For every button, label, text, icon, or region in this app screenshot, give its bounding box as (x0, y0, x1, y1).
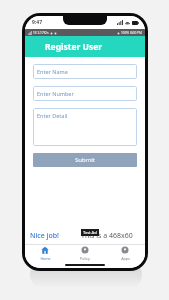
staticText: 9:47 (32, 19, 42, 26)
staticText: Enter Name (37, 68, 68, 75)
staticText: Nice job! (30, 231, 60, 241)
button[interactable]: Enter Name (33, 64, 137, 79)
staticText: Policy (80, 256, 90, 261)
button[interactable]: Policy (65, 245, 105, 262)
staticText: Apps (121, 256, 130, 261)
staticText: Register User (45, 41, 103, 53)
staticText: Test Ad (83, 230, 97, 235)
button[interactable]: Home (25, 245, 65, 262)
staticText: Home (40, 256, 51, 261)
staticText: 100% 8:00 PM (121, 31, 142, 35)
button[interactable]: Nice job! (25, 228, 145, 244)
button[interactable]: Apps (105, 245, 145, 262)
staticText: This is a 468x60 test a (81, 231, 145, 241)
staticText: Submit (75, 156, 96, 164)
button[interactable]: Enter Number (33, 86, 137, 101)
staticText: Enter Detail (37, 112, 68, 119)
staticText: 1E 3.17K/s (33, 31, 49, 35)
button[interactable]: Enter Detail (33, 108, 137, 146)
button[interactable]: Submit (33, 153, 137, 167)
staticText: Enter Number (37, 90, 74, 97)
